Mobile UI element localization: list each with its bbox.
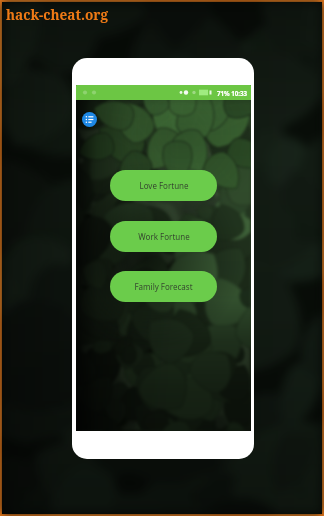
- staticText: Work Fortune: [138, 231, 190, 242]
- button[interactable]: Menu: [82, 112, 97, 127]
- staticText: Family Forecast: [134, 281, 193, 292]
- button[interactable]: Work Fortune: [110, 221, 217, 252]
- staticText: 71% 10:33: [217, 89, 248, 97]
- button[interactable]: Love Fortune: [110, 170, 217, 201]
- staticText: hack-cheat.org: [6, 5, 108, 24]
- button[interactable]: Family Forecast: [110, 271, 217, 302]
- staticText: Love Fortune: [139, 180, 189, 191]
